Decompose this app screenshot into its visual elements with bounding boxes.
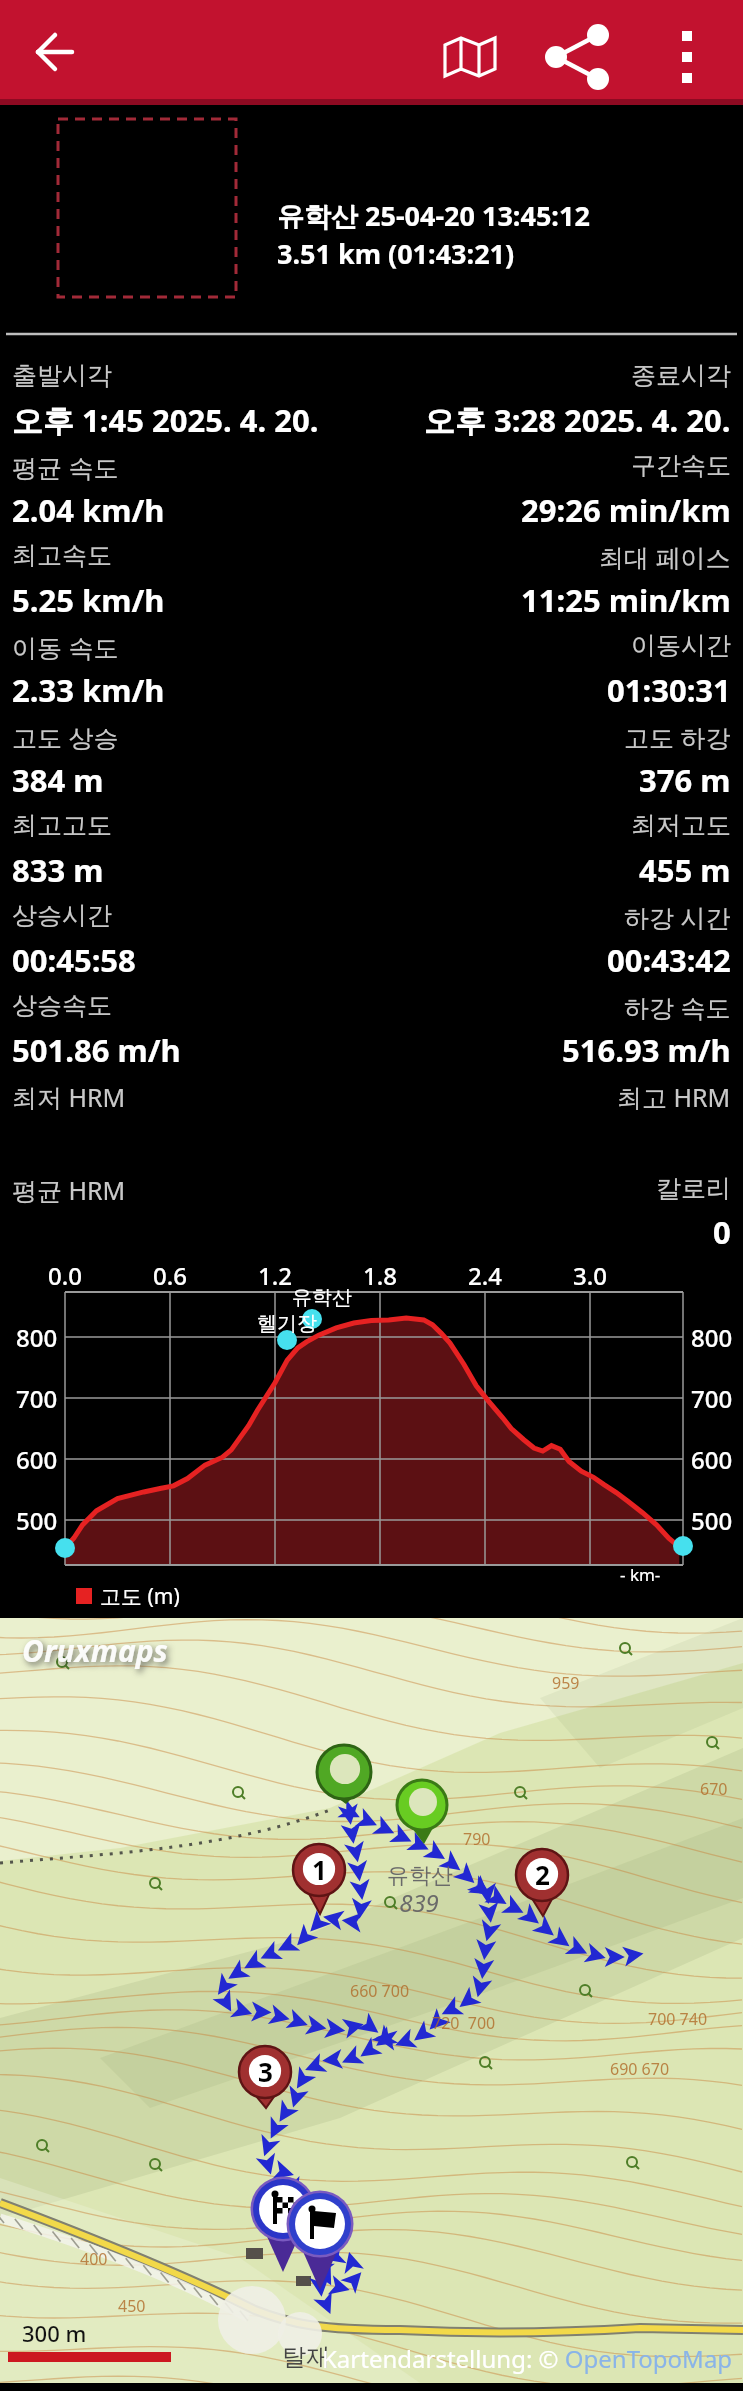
staticText: 670 [700,1778,728,1800]
staticText: 고도 하강 [624,720,731,754]
staticText: 탈재 [282,2342,330,2372]
staticText: 00:43:42 [607,939,731,981]
staticText: 5.25 km/h [12,579,165,621]
staticText: 하강 시간 [624,900,731,934]
staticText: 2.04 km/h [12,489,165,531]
staticText: 790 [463,1828,491,1850]
staticText: 11:25 min/km [521,579,731,621]
staticText: 이동 속도 [12,630,119,664]
staticText: 유학산 [292,1285,352,1310]
staticText: 2.33 km/h [12,669,165,711]
staticText: 출발시각 [12,360,112,391]
staticText: 상승시간 [12,900,112,931]
staticText: 800 [16,1321,58,1354]
staticText: 오후 1:45 2025. 4. 20. [12,399,319,441]
staticText: 600 [16,1443,58,1476]
staticText: 959 [552,1672,580,1694]
staticText: 고도 (m) [100,1582,180,1611]
staticText: 700 740 [648,2008,708,2030]
staticText: 헬기장 [257,1311,317,1336]
staticText: 600 [691,1443,733,1476]
staticText: 2 [535,1857,550,1892]
staticText: 0 [713,1211,731,1253]
staticText: 이동시간 [631,630,731,661]
staticText: 455 m [639,849,731,891]
staticText: 2.4 [468,1259,502,1292]
staticText: 500 [16,1504,58,1537]
staticText: 1.8 [363,1259,397,1292]
staticText: 516.93 m/h [562,1029,731,1071]
staticText: 3 [258,2054,273,2089]
staticText: 최고고도 [12,810,112,841]
staticText: 839 [399,1886,439,1919]
staticText: 833 m [12,849,104,891]
staticText: 평균 속도 [12,450,119,484]
staticText: 최고 HRM [617,1080,731,1114]
staticText: Kartendarstellung: © OpenTopoMap [322,2342,733,2375]
staticText: 700 [691,1382,733,1415]
staticText: 고도 상승 [12,720,119,754]
staticText: 상승속도 [12,990,112,1021]
staticText: 구간속도 [631,450,731,481]
staticText: 690 670 [610,2058,670,2080]
staticText: 01:30:31 [607,669,731,711]
staticText: - km- [620,1563,661,1586]
staticText: 최저 HRM [12,1080,126,1114]
staticText: 720 700 [432,2012,496,2034]
staticText: 최대 페이스 [599,540,731,574]
staticText: 최고속도 [12,540,112,571]
staticText: 450 [118,2295,146,2317]
staticText: 660 700 [350,1980,410,2002]
staticText: 하강 속도 [624,990,731,1024]
staticText: 3.51 km (01:43:21) [277,235,515,272]
staticText: 평균 HRM [12,1173,126,1207]
staticText: 오후 3:28 2025. 4. 20. [424,399,731,441]
staticText: 칼로리 [656,1173,731,1204]
staticText: 00:45:58 [12,939,136,981]
staticText: 384 m [12,759,104,801]
staticText: 1 [312,1852,327,1887]
staticText: 400 [80,2248,108,2270]
staticText: 1.2 [258,1259,292,1292]
staticText: 700 [16,1382,58,1415]
staticText: 800 [691,1321,733,1354]
staticText: 3.0 [573,1259,607,1292]
staticText: 종료시각 [631,360,731,391]
staticText: 300 m [22,2318,87,2348]
staticText: Oruxmaps [22,1630,168,1671]
staticText: 29:26 min/km [521,489,731,531]
staticText: 376 m [639,759,731,801]
staticText: 유학산 25-04-20 13:45:12 [277,197,590,234]
staticText: 0.6 [153,1259,187,1292]
staticText: 0.0 [48,1259,82,1292]
staticText: 유학산 [387,1862,453,1890]
staticText: 501.86 m/h [12,1029,181,1071]
staticText: 500 [691,1504,733,1537]
staticText: 최저고도 [631,810,731,841]
